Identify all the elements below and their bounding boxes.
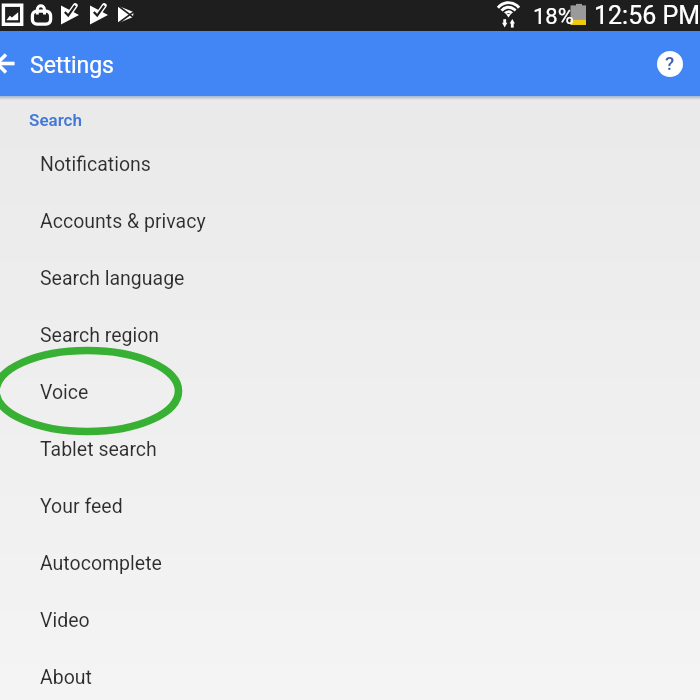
button[interactable]: Autocomplete bbox=[0, 552, 700, 609]
staticText: ? bbox=[665, 52, 675, 74]
button[interactable]: Tablet search bbox=[0, 438, 700, 495]
button[interactable]: Search language bbox=[0, 267, 700, 324]
staticText: Search region bbox=[40, 324, 160, 347]
staticText: Video bbox=[40, 609, 90, 632]
button[interactable]: Accounts & privacy bbox=[0, 210, 700, 267]
staticText: 18% bbox=[533, 4, 574, 30]
staticText: Tablet search bbox=[40, 438, 157, 461]
staticText: Voice bbox=[40, 381, 89, 404]
staticText: Search language bbox=[40, 267, 185, 290]
staticText: About bbox=[40, 666, 92, 689]
staticText: Autocomplete bbox=[40, 552, 162, 575]
staticText: Settings bbox=[30, 52, 114, 79]
button[interactable]: Your feed bbox=[0, 495, 700, 552]
button[interactable]: Help bbox=[646, 40, 694, 88]
button[interactable]: Notifications bbox=[0, 153, 700, 210]
staticText: 12:56 PM bbox=[594, 1, 700, 30]
button[interactable]: Video bbox=[0, 609, 700, 666]
button[interactable]: Navigate up bbox=[0, 38, 42, 88]
button[interactable]: Voice bbox=[0, 381, 700, 438]
staticText: Accounts & privacy bbox=[40, 210, 206, 233]
button[interactable]: About bbox=[0, 666, 700, 700]
staticText: Search bbox=[29, 110, 82, 130]
staticText: Your feed bbox=[40, 495, 123, 518]
staticText: Notifications bbox=[40, 153, 151, 176]
button[interactable]: Search region bbox=[0, 324, 700, 381]
